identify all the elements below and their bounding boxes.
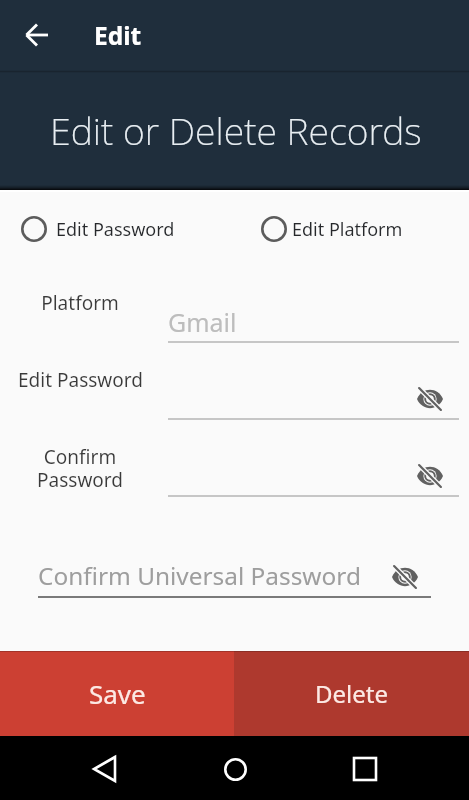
staticText: Gmail bbox=[168, 305, 237, 339]
button[interactable]: Edit Platform bbox=[261, 216, 403, 242]
staticText: Edit Platform bbox=[292, 217, 403, 242]
staticText: Save bbox=[89, 676, 146, 711]
staticText: Confirm Universal Password bbox=[38, 559, 361, 592]
staticText: Edit bbox=[94, 19, 142, 52]
button[interactable]: Edit Password bbox=[21, 216, 175, 242]
staticText: Edit or Delete Records bbox=[50, 105, 422, 156]
staticText: Delete bbox=[315, 677, 388, 710]
button[interactable]: Delete bbox=[234, 651, 469, 736]
staticText: Confirm Password bbox=[37, 444, 123, 493]
button[interactable]: Toggle password visibility bbox=[388, 560, 422, 594]
button[interactable]: Home bbox=[207, 741, 263, 797]
staticText: Edit Password bbox=[56, 217, 175, 242]
button[interactable]: Toggle password visibility bbox=[413, 459, 447, 493]
staticText: Edit Password bbox=[18, 367, 143, 393]
button[interactable]: Back bbox=[8, 6, 65, 63]
button[interactable]: Recent apps bbox=[337, 741, 393, 797]
button[interactable]: Toggle password visibility bbox=[413, 382, 447, 416]
button[interactable]: Save bbox=[0, 651, 234, 736]
button[interactable]: Back bbox=[76, 741, 132, 797]
staticText: Platform bbox=[41, 290, 119, 316]
